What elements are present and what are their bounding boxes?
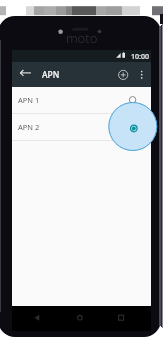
button[interactable]: Home	[72, 311, 88, 327]
staticText: APN 2	[18, 122, 40, 132]
button[interactable]: Add APN	[115, 66, 132, 83]
staticText: APN	[42, 69, 60, 81]
staticText: 10:00	[131, 52, 149, 62]
button[interactable]: Recent apps	[113, 311, 129, 327]
button[interactable]: Back	[15, 65, 31, 81]
button[interactable]: APN 2	[12, 114, 151, 141]
staticText: APN 1	[18, 95, 40, 105]
button[interactable]: Back	[29, 311, 45, 327]
button[interactable]: APN 1	[12, 87, 151, 114]
button[interactable]: More options	[135, 66, 149, 80]
staticText: moto	[66, 29, 98, 43]
